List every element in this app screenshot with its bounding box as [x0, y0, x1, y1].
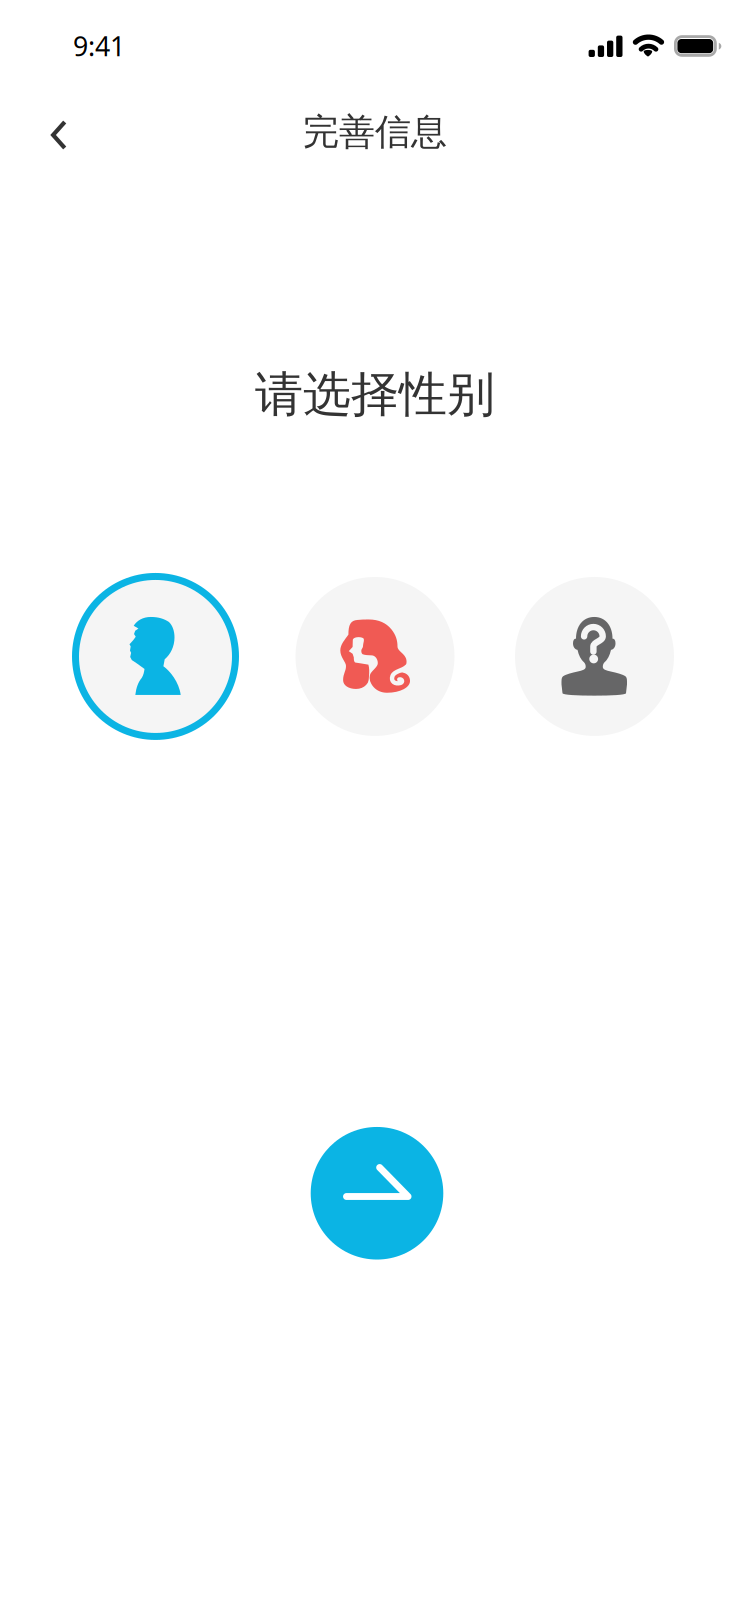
button[interactable]: 返回: [22, 94, 98, 170]
button[interactable]: 保密: [511, 573, 678, 740]
button[interactable]: 男: [72, 573, 239, 740]
staticText: 9:41: [73, 28, 125, 64]
button[interactable]: 下一步: [309, 1127, 441, 1260]
staticText: 请选择性别: [255, 365, 495, 424]
staticText: 完善信息: [303, 110, 447, 154]
button[interactable]: 女: [291, 573, 458, 740]
